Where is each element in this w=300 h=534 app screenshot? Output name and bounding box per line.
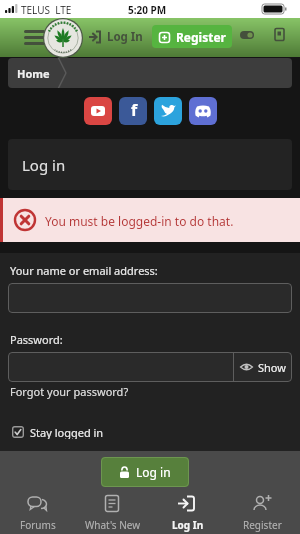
button[interactable] <box>84 97 112 125</box>
staticText: Log in <box>22 155 66 175</box>
staticText: Forums <box>20 518 56 532</box>
button[interactable]: Log In <box>88 24 143 50</box>
button[interactable]: What's New <box>75 487 150 534</box>
staticText: Your name or email address: <box>10 263 158 278</box>
button[interactable]: Register <box>225 487 300 534</box>
staticText: Password: <box>10 332 63 347</box>
button[interactable]: Forums <box>0 487 75 534</box>
button[interactable]: Register <box>152 25 232 48</box>
button[interactable] <box>154 97 182 125</box>
staticText: Stay logged in <box>30 425 104 439</box>
staticText: Log in <box>136 464 171 480</box>
button[interactable] <box>189 97 217 125</box>
staticText: f <box>131 99 138 121</box>
staticText: TELUS LTE <box>21 3 72 17</box>
staticText: Show <box>258 360 286 375</box>
staticText: Forgot your password? <box>10 384 129 399</box>
staticText: Register <box>243 518 282 532</box>
staticText: Log In <box>107 29 143 45</box>
button[interactable] <box>238 27 258 43</box>
staticText: You must be logged-in to do that. <box>45 213 234 229</box>
button[interactable]: Log in <box>101 457 189 487</box>
button[interactable] <box>271 27 287 43</box>
staticText: Register <box>176 29 226 45</box>
button[interactable] <box>18 24 52 52</box>
button[interactable]: f <box>119 97 147 125</box>
button[interactable]: Forgot your password? <box>10 384 129 400</box>
staticText: Log In <box>172 518 204 532</box>
staticText: What's New <box>85 518 141 532</box>
button[interactable]: Home <box>8 58 70 88</box>
button[interactable]: Log In <box>150 487 225 534</box>
staticText: 5:20 PM <box>128 3 167 17</box>
button[interactable] <box>43 18 83 57</box>
staticText: Home <box>17 66 50 81</box>
button[interactable]: Stay logged in <box>12 425 104 439</box>
button[interactable]: Show <box>233 352 292 382</box>
